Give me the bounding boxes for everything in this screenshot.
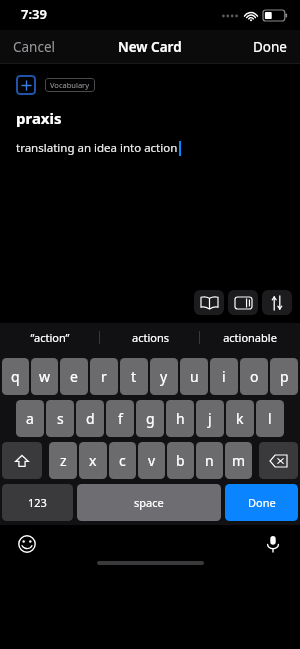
button[interactable]: Shift (2, 442, 42, 479)
button[interactable]: h (166, 400, 194, 437)
staticText: w (39, 367, 51, 386)
button[interactable]: j (196, 400, 224, 437)
staticText: b (176, 451, 185, 470)
button[interactable]: actions (100, 323, 200, 352)
button[interactable]: Add tag (16, 75, 36, 95)
button[interactable]: space (77, 484, 221, 521)
button[interactable]: Backspace (259, 442, 298, 479)
staticText: actions (132, 330, 169, 345)
button[interactable]: Done (225, 484, 298, 521)
button[interactable]: Emoji (14, 531, 40, 557)
staticText: q (11, 367, 20, 386)
staticText: x (89, 451, 97, 470)
staticText: a (26, 409, 34, 428)
button[interactable]: Card view (228, 290, 258, 315)
button[interactable]: s (46, 400, 74, 437)
staticText: Vocabulary (50, 80, 90, 90)
button[interactable]: v (138, 442, 165, 479)
button[interactable]: w (31, 358, 58, 395)
button[interactable]: m (225, 442, 252, 479)
button[interactable]: Cancel (0, 32, 69, 62)
staticText: Done (253, 38, 287, 56)
staticText: c (119, 451, 126, 470)
button[interactable]: Dictation (260, 531, 286, 557)
staticText: e (70, 367, 78, 386)
staticText: z (60, 451, 67, 470)
staticText: praxis (16, 108, 62, 128)
staticText: y (160, 367, 168, 386)
button[interactable]: z (49, 442, 77, 479)
button[interactable]: b (167, 442, 194, 479)
staticText: Cancel (13, 38, 56, 56)
button[interactable]: a (16, 400, 44, 437)
staticText: space (134, 495, 164, 510)
button[interactable]: actionable (200, 323, 300, 352)
staticText: s (57, 409, 64, 428)
staticText: n (205, 451, 214, 470)
staticText: d (86, 409, 95, 428)
button[interactable]: y (150, 358, 178, 395)
staticText: u (190, 367, 199, 386)
staticText: translating an idea into action (16, 140, 178, 156)
staticText: h (176, 409, 185, 428)
button[interactable]: q (2, 358, 29, 395)
staticText: f (118, 409, 123, 428)
staticText: o (250, 367, 259, 386)
button[interactable]: t (120, 358, 148, 395)
staticText: t (131, 367, 137, 386)
button[interactable]: “action” (0, 323, 100, 352)
button[interactable]: Done (240, 32, 300, 62)
staticText: k (236, 409, 244, 428)
button[interactable]: o (240, 358, 268, 395)
staticText: New Card (118, 38, 182, 56)
button[interactable]: u (180, 358, 208, 395)
button[interactable]: c (109, 442, 136, 479)
staticText: p (280, 367, 289, 386)
staticText: “action” (30, 330, 70, 345)
button[interactable]: e (60, 358, 88, 395)
staticText: v (148, 451, 156, 470)
button[interactable]: Dictionary (194, 290, 224, 315)
button[interactable]: l (256, 400, 284, 437)
staticText: r (101, 367, 107, 386)
staticText: 123 (28, 495, 47, 510)
staticText: m (232, 451, 246, 470)
button[interactable]: Swap fields (262, 290, 292, 315)
staticText: 7:39 (21, 5, 47, 23)
button[interactable]: i (210, 358, 238, 395)
staticText: g (146, 409, 155, 428)
staticText: l (268, 409, 272, 428)
button[interactable]: f (106, 400, 134, 437)
button[interactable]: n (196, 442, 223, 479)
button[interactable]: p (270, 358, 298, 395)
button[interactable]: Vocabulary (45, 78, 95, 92)
button[interactable]: x (79, 442, 107, 479)
button[interactable]: k (226, 400, 254, 437)
staticText: actionable (223, 330, 277, 345)
staticText: Done (248, 495, 276, 510)
staticText: i (222, 367, 226, 386)
button[interactable]: g (136, 400, 164, 437)
button[interactable]: 123 (2, 484, 73, 521)
button[interactable]: d (76, 400, 104, 437)
staticText: j (208, 409, 212, 428)
button[interactable]: r (90, 358, 118, 395)
